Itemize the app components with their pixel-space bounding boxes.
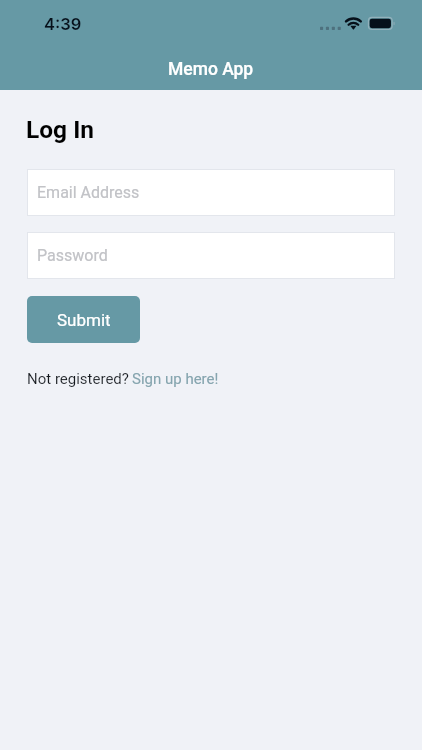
button[interactable]: Email Address [27,169,395,216]
staticText: Password [37,246,108,265]
staticText: 4:39 [44,14,82,34]
button[interactable]: Sign up here! [132,370,219,388]
button[interactable]: Password [27,232,395,279]
staticText: Email Address [37,183,140,202]
staticText: Memo App [168,59,254,80]
staticText: Submit [57,310,111,330]
staticText: Not registered? [27,370,129,388]
button[interactable]: Submit [27,296,140,343]
other: Status icons [316,14,398,32]
staticText: Log In [26,115,95,144]
